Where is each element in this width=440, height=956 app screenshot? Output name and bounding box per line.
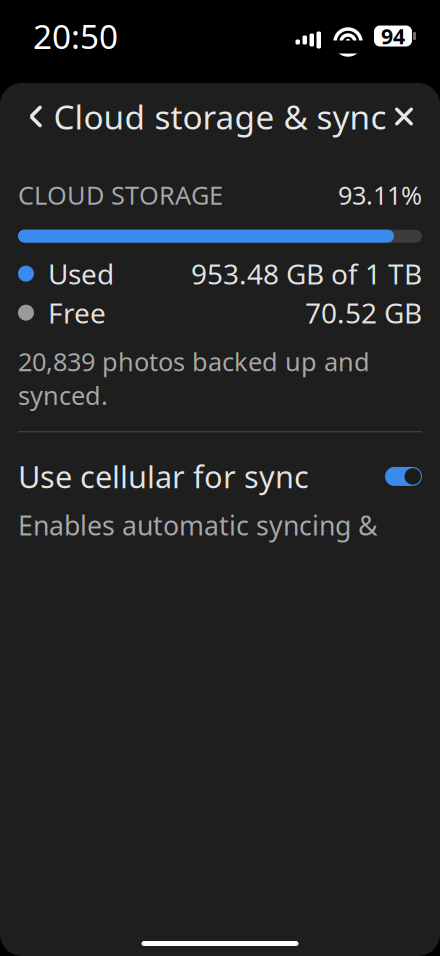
- staticText: 20,839 photos backed up and synced.: [18, 345, 370, 412]
- button[interactable]: Back: [8, 88, 64, 144]
- staticText: 953.48 GB of 1 TB: [191, 255, 422, 292]
- staticText: 93.11%: [338, 178, 422, 212]
- staticText: 20:50: [33, 14, 118, 58]
- staticText: Free: [48, 294, 106, 331]
- button[interactable]: Use cellular for sync: [0, 454, 440, 498]
- button[interactable]: Close: [376, 88, 432, 144]
- staticText: Good quality for social sharing and work…: [18, 899, 399, 956]
- staticText: CLOUD STORAGE: [18, 178, 223, 212]
- staticText: Use cellular for sync: [18, 456, 309, 497]
- staticText: Cloud storage & sync: [53, 94, 386, 139]
- staticText: 70.52 GB: [305, 294, 422, 331]
- staticText: 94: [381, 22, 405, 50]
- staticText: Used: [48, 255, 114, 292]
- staticText: Enables automatic syncing & backup using…: [18, 507, 385, 750]
